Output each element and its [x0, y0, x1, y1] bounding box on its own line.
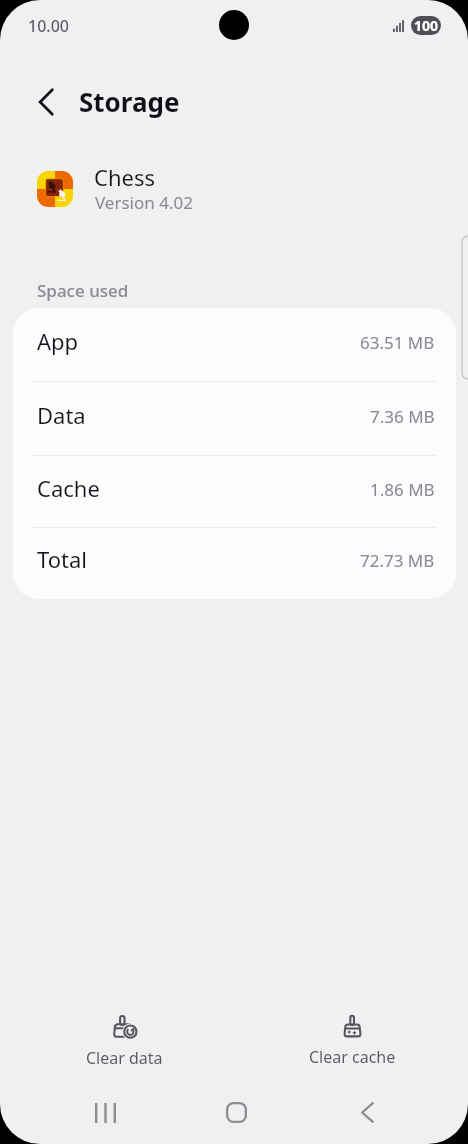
staticText: Total — [37, 544, 87, 574]
button[interactable]: Back — [24, 80, 68, 124]
button[interactable]: Clear data — [18, 1000, 230, 1080]
staticText: Chess — [94, 162, 155, 192]
button[interactable]: Data — [13, 382, 456, 456]
staticText: 63.51 MB — [360, 331, 435, 354]
staticText: Version 4.02 — [95, 191, 193, 214]
button[interactable]: Cache — [13, 456, 456, 528]
staticText: Cache — [37, 473, 100, 503]
staticText: App — [37, 326, 79, 356]
staticText: Space used — [37, 279, 129, 302]
button[interactable]: Clear cache — [246, 1000, 458, 1080]
button[interactable]: Home — [207, 1083, 265, 1141]
staticText: Clear cache — [309, 1046, 396, 1068]
staticText: Storage — [79, 84, 180, 119]
button[interactable]: Total — [13, 528, 456, 599]
staticText: 1.86 MB — [370, 478, 435, 501]
staticText: Clear data — [86, 1047, 163, 1069]
staticText: Data — [37, 400, 86, 430]
staticText: 72.73 MB — [360, 549, 435, 572]
button[interactable]: Back — [338, 1083, 396, 1141]
button[interactable]: App — [13, 308, 456, 382]
staticText: 100 — [414, 16, 439, 35]
staticText: 7.36 MB — [370, 405, 435, 428]
button[interactable]: Recent apps — [76, 1084, 134, 1142]
staticText: 10.00 — [28, 15, 69, 37]
